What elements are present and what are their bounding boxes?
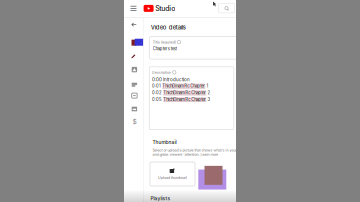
button[interactable]: Menu xyxy=(128,2,139,14)
staticText: Thumbnail xyxy=(152,139,176,145)
staticText: Description xyxy=(152,70,171,75)
staticText: ThichDinamRc Chapter xyxy=(163,90,206,95)
staticText: Chapters test xyxy=(153,46,177,51)
staticText: $ xyxy=(132,118,136,126)
staticText: Video details xyxy=(151,24,186,31)
button[interactable]: Section 4 xyxy=(131,105,138,112)
staticText: 2 xyxy=(208,90,211,95)
staticText: Upload thumbnail xyxy=(158,175,187,180)
staticText: 3 xyxy=(208,97,211,102)
button[interactable]: Section 5 xyxy=(131,118,138,125)
button[interactable]: Section 1 xyxy=(131,66,138,73)
staticText: 0:02 xyxy=(152,90,162,95)
staticText: 1 xyxy=(207,83,209,88)
button[interactable]: Back xyxy=(131,22,137,27)
staticText: Title (required) xyxy=(153,40,176,44)
button[interactable]: Upload thumbnail xyxy=(150,162,195,186)
button[interactable]: Search xyxy=(218,3,234,13)
button[interactable]: Studio xyxy=(144,4,175,13)
staticText: Select or upload a picture that shows wh… xyxy=(152,148,246,157)
button[interactable]: Section 3 xyxy=(131,92,138,99)
staticText: ThichDinamRc Chapter xyxy=(162,83,205,88)
staticText: ThichDinamRc Chapter xyxy=(163,97,206,102)
button[interactable]: Details xyxy=(131,54,136,59)
staticText: Studio xyxy=(155,4,175,13)
button[interactable]: Section 2 xyxy=(131,79,138,86)
staticText: Playlists xyxy=(151,195,171,201)
staticText: 0:05 xyxy=(152,97,162,102)
staticText: 0:00 Introduction xyxy=(152,77,190,82)
staticText: 0:01 xyxy=(152,83,161,88)
